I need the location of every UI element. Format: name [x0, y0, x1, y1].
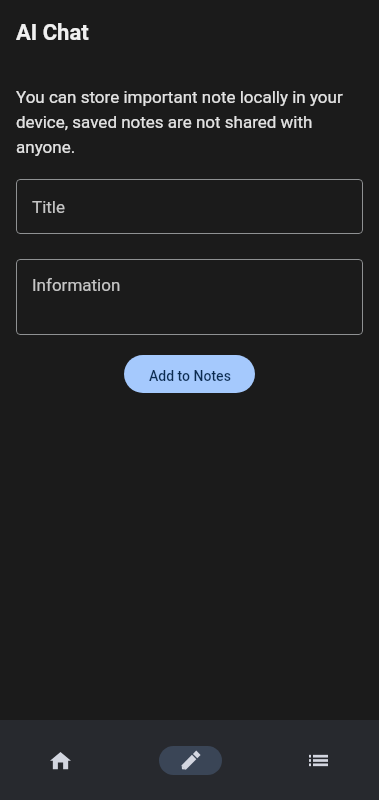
staticText: AI Chat	[16, 20, 89, 46]
button[interactable]: Title	[16, 179, 363, 234]
staticText: Title	[32, 197, 65, 217]
staticText: Information	[32, 275, 121, 295]
button[interactable]: Information	[16, 259, 363, 335]
button[interactable]: Home	[10, 720, 110, 780]
staticText: You can store important note locally in …	[16, 87, 363, 157]
button[interactable]: New note	[140, 720, 240, 780]
button[interactable]: Add to Notes	[124, 355, 255, 393]
button[interactable]: Notes list	[268, 720, 368, 780]
staticText: Add to Notes	[149, 368, 231, 384]
